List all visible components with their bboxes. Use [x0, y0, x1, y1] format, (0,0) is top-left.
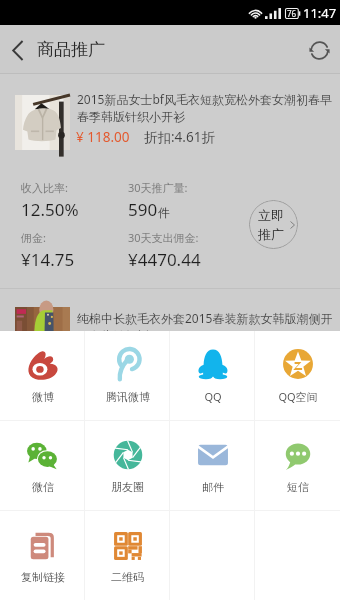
staticText: 立即	[258, 207, 284, 223]
button[interactable]: 微博	[0, 331, 85, 420]
staticText: 590	[128, 198, 158, 221]
staticText: 复制链接	[21, 570, 65, 584]
staticText: 纯棉中长款毛衣外套2015春装新款女韩版潮侧开叉套头针织衫	[77, 310, 335, 343]
staticText: 11:47	[303, 4, 337, 22]
staticText: 推广	[258, 226, 284, 242]
button[interactable]: 腾讯微博	[85, 331, 170, 420]
staticText: ¥14.75	[21, 248, 75, 271]
staticText: 12.50%	[21, 198, 79, 221]
staticText: 2015新品女士bf风毛衣短款宽松外套女潮初春早春季韩版针织小开衫	[77, 91, 335, 124]
button[interactable]: 邮件	[170, 421, 255, 510]
staticText: 件	[158, 205, 170, 220]
staticText: 30天推广量:	[128, 180, 188, 195]
staticText: 收入比率:	[21, 180, 68, 195]
staticText: 微信	[32, 480, 54, 494]
button[interactable]: Back	[0, 26, 36, 74]
staticText: QQ空间	[278, 389, 318, 404]
button[interactable]: 复制链接	[0, 511, 85, 600]
staticText: ¥4470.44	[128, 248, 201, 271]
staticText: 76	[287, 8, 297, 19]
staticText: 短信	[287, 480, 309, 494]
staticText: 折扣:4.61折	[144, 128, 215, 146]
staticText: 商品推广	[37, 39, 105, 60]
staticText: 二维码	[111, 570, 144, 584]
button[interactable]: 二维码	[85, 511, 170, 600]
staticText: 朋友圈	[111, 480, 144, 494]
button[interactable]: QQ空间	[255, 331, 340, 420]
staticText: 30天支出佣金:	[128, 230, 199, 245]
button[interactable]: QQ	[170, 331, 255, 420]
button[interactable]: 立即	[249, 200, 298, 249]
staticText: ¥ 118.00	[76, 128, 130, 146]
button[interactable]: 短信	[255, 421, 340, 510]
staticText: 腾讯微博	[106, 390, 150, 404]
button[interactable]: 朋友圈	[85, 421, 170, 510]
staticText: 微博	[32, 390, 54, 404]
button[interactable]: Refresh	[298, 26, 340, 74]
staticText: 邮件	[202, 480, 224, 494]
button[interactable]: 微信	[0, 421, 85, 510]
staticText: 佣金:	[21, 230, 46, 245]
staticText: QQ	[204, 389, 222, 404]
